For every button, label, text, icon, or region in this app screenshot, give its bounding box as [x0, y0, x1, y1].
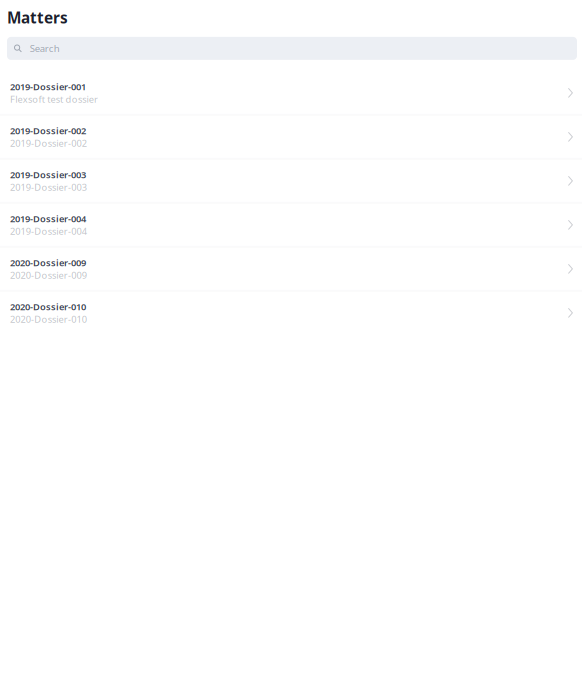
button[interactable]: Search: [7, 37, 577, 60]
button[interactable]: 2019-Dossier-002: [0, 116, 582, 160]
staticText: 2020-Dossier-009: [10, 256, 86, 269]
staticText: 2019-Dossier-002: [10, 124, 86, 137]
staticText: Matters: [7, 7, 68, 28]
staticText: 2020-Dossier-010: [10, 300, 86, 313]
button[interactable]: 2020-Dossier-009: [0, 248, 582, 292]
button[interactable]: 2020-Dossier-010: [0, 292, 582, 336]
staticText: 2020-Dossier-009: [10, 269, 87, 282]
staticText: Flexsoft test dossier: [10, 93, 98, 106]
button[interactable]: 2019-Dossier-001: [0, 72, 582, 116]
staticText: 2019-Dossier-004: [10, 212, 86, 225]
staticText: 2020-Dossier-010: [10, 313, 87, 326]
staticText: 2019-Dossier-001: [10, 80, 86, 93]
staticText: 2019-Dossier-002: [10, 137, 87, 150]
button[interactable]: 2019-Dossier-003: [0, 160, 582, 204]
staticText: Search: [30, 42, 60, 55]
staticText: 2019-Dossier-003: [10, 168, 86, 181]
staticText: 2019-Dossier-004: [10, 225, 87, 238]
button[interactable]: 2019-Dossier-004: [0, 204, 582, 248]
staticText: 2019-Dossier-003: [10, 181, 87, 194]
